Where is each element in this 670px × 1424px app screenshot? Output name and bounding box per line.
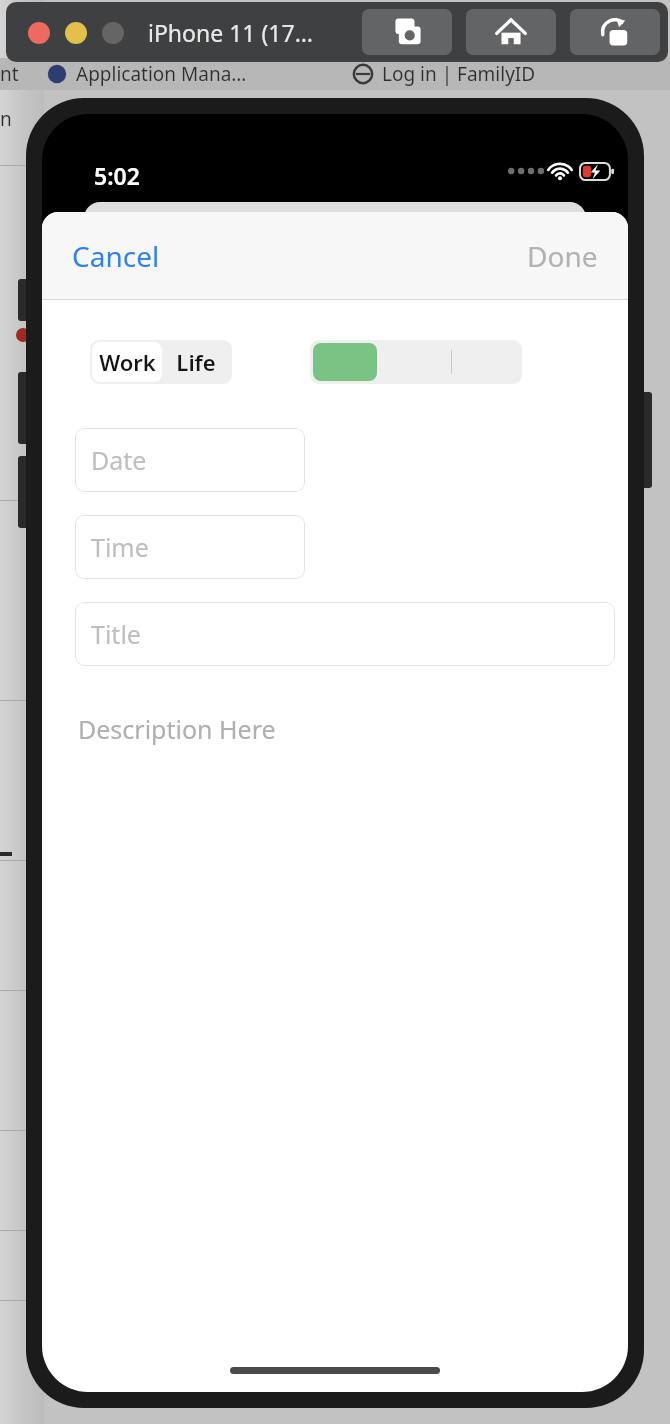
staticText: nt xyxy=(0,61,19,87)
button[interactable]: Life xyxy=(162,342,230,382)
staticText: Cancel xyxy=(72,237,160,275)
staticText: Description Here xyxy=(78,712,276,746)
button[interactable]: Title xyxy=(75,602,615,666)
staticText: Date xyxy=(91,443,147,477)
staticText: Title xyxy=(91,617,141,651)
staticText: Life xyxy=(176,347,216,377)
button[interactable]: Date xyxy=(75,428,305,492)
staticText: 5:02 xyxy=(94,160,140,191)
button[interactable]: Time xyxy=(75,515,305,579)
button[interactable]: Home xyxy=(466,9,556,55)
button[interactable]: Minimize xyxy=(65,22,87,44)
button[interactable]: Cancel xyxy=(56,229,176,283)
button[interactable]: Green category xyxy=(313,343,377,381)
button[interactable]: Work xyxy=(92,342,162,382)
staticText: Done xyxy=(527,237,598,275)
button[interactable]: Screenshot xyxy=(362,9,452,55)
staticText: Time xyxy=(91,530,149,564)
staticText: Log in | FamilyID xyxy=(382,61,536,87)
staticText: Work xyxy=(99,347,156,377)
button[interactable]: Maximize xyxy=(102,22,124,44)
staticText: n xyxy=(0,106,12,132)
button[interactable]: Rotate xyxy=(570,9,660,55)
button[interactable]: Close xyxy=(28,22,50,44)
button[interactable]: Done xyxy=(511,229,614,283)
staticText: Application Mana… xyxy=(76,61,247,87)
staticText: iPhone 11 (17… xyxy=(148,17,313,48)
